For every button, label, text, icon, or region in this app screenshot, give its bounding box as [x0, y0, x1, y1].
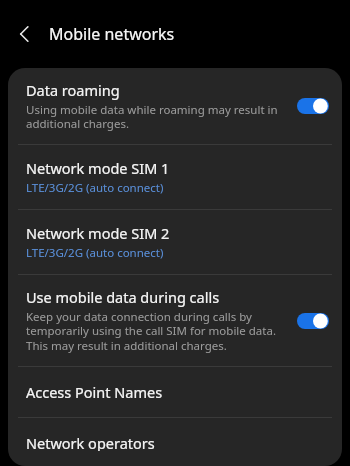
staticText: LTE/3G/2G (auto connect): [26, 245, 164, 261]
button[interactable]: Data roaming: [8, 70, 342, 144]
staticText: Network mode SIM 1: [26, 158, 170, 178]
button[interactable]: Back: [8, 17, 42, 51]
staticText: Use mobile data during calls: [26, 287, 220, 307]
button[interactable]: Toggle: [297, 313, 329, 329]
staticText: Network mode SIM 2: [26, 223, 170, 243]
staticText: LTE/3G/2G (auto connect): [26, 180, 164, 196]
staticText: Data roaming: [26, 80, 120, 100]
button[interactable]: Network operators: [8, 418, 342, 466]
button[interactable]: Network mode SIM 2: [8, 210, 342, 274]
staticText: Network operators: [26, 433, 155, 451]
button[interactable]: Toggle: [297, 98, 329, 114]
button[interactable]: Access Point Names: [8, 367, 342, 417]
staticText: Access Point Names: [26, 382, 163, 402]
staticText: Mobile networks: [49, 23, 175, 45]
staticText: Keep your data connection during calls b…: [26, 309, 287, 354]
button[interactable]: Network mode SIM 1: [8, 145, 342, 209]
button[interactable]: Use mobile data during calls: [8, 275, 342, 366]
staticText: Using mobile data while roaming may resu…: [26, 102, 287, 132]
